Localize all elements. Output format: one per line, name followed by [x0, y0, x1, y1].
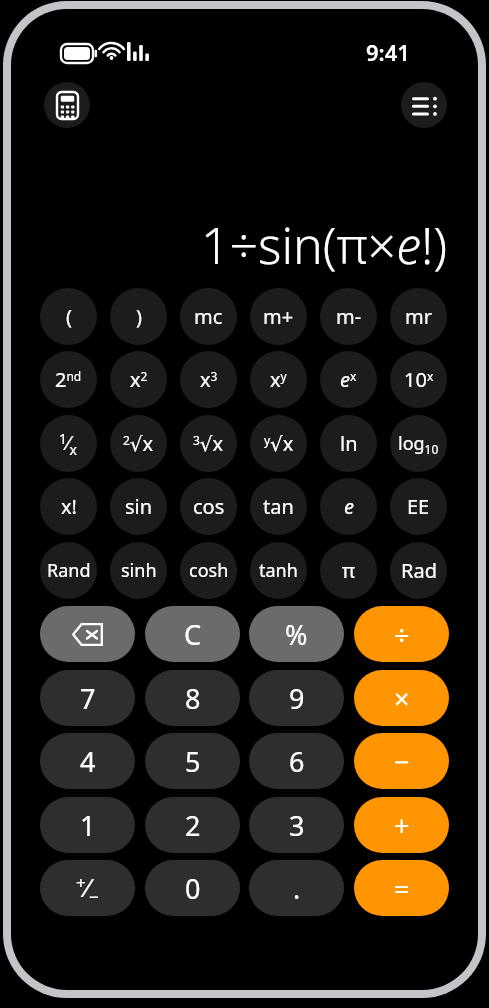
button[interactable]: =: [354, 860, 449, 916]
staticText: +: [394, 807, 410, 844]
button[interactable]: 9: [249, 670, 344, 726]
button[interactable]: C: [145, 606, 240, 662]
button[interactable]: 0: [145, 860, 240, 916]
staticText: 9:41: [366, 37, 410, 67]
staticText: 9: [289, 680, 305, 717]
button[interactable]: x!: [40, 478, 97, 535]
button[interactable]: sinh: [110, 542, 167, 599]
staticText: x2: [130, 366, 148, 393]
staticText: ex: [340, 366, 357, 393]
button[interactable]: Rand: [40, 542, 97, 599]
button[interactable]: EE: [390, 478, 447, 535]
button[interactable]: ln: [320, 415, 377, 472]
button[interactable]: m-: [320, 288, 377, 345]
button[interactable]: +: [354, 797, 449, 853]
staticText: ÷: [394, 616, 410, 653]
button[interactable]: 5: [145, 733, 240, 789]
button[interactable]: 1: [40, 797, 135, 853]
staticText: +⁄−: [76, 869, 99, 908]
staticText: m+: [263, 303, 294, 330]
button[interactable]: 6: [249, 733, 344, 789]
button[interactable]: 2√x: [110, 415, 167, 472]
button[interactable]: sin: [110, 478, 167, 535]
button[interactable]: tan: [250, 478, 307, 535]
button[interactable]: mc: [180, 288, 237, 345]
staticText: tanh: [259, 558, 298, 583]
button[interactable]: xy: [250, 351, 307, 408]
staticText: ): [136, 303, 142, 330]
staticText: y√x: [264, 430, 294, 457]
button[interactable]: ): [110, 288, 167, 345]
staticText: 1: [80, 807, 96, 844]
button[interactable]: 4: [40, 733, 135, 789]
staticText: cosh: [189, 558, 229, 583]
staticText: 10x: [404, 366, 434, 393]
button[interactable]: 1⁄x: [40, 415, 97, 472]
staticText: cos: [193, 493, 225, 520]
staticText: 8: [185, 680, 201, 717]
staticText: Rad: [401, 557, 437, 584]
staticText: mr: [405, 303, 432, 330]
button[interactable]: 2nd: [40, 351, 97, 408]
staticText: C: [184, 616, 202, 653]
staticText: 0: [185, 870, 201, 907]
button[interactable]: −: [354, 733, 449, 789]
button[interactable]: cos: [180, 478, 237, 535]
button[interactable]: ÷: [354, 606, 449, 662]
button[interactable]: 7: [40, 670, 135, 726]
staticText: 1⁄x: [59, 429, 78, 459]
staticText: e: [344, 493, 354, 520]
button[interactable]: mr: [390, 288, 447, 345]
staticText: ×: [394, 680, 410, 717]
button[interactable]: 3√x: [180, 415, 237, 472]
button[interactable]: .: [249, 860, 344, 916]
staticText: Rand: [47, 558, 91, 583]
button[interactable]: Calculator: [44, 82, 90, 128]
staticText: =: [394, 870, 410, 907]
staticText: π: [342, 557, 356, 584]
staticText: mc: [194, 303, 223, 330]
button[interactable]: ex: [320, 351, 377, 408]
staticText: %: [285, 616, 308, 653]
staticText: xy: [270, 366, 287, 393]
staticText: 4: [80, 743, 96, 780]
button[interactable]: %: [249, 606, 344, 662]
button[interactable]: ×: [354, 670, 449, 726]
staticText: x!: [61, 493, 77, 520]
staticText: (: [66, 303, 72, 330]
staticText: 3√x: [193, 430, 224, 457]
button[interactable]: x2: [110, 351, 167, 408]
button[interactable]: Delete: [40, 606, 135, 662]
button[interactable]: m+: [250, 288, 307, 345]
button[interactable]: Toggle sign: [40, 860, 135, 916]
staticText: tan: [263, 493, 294, 520]
button[interactable]: tanh: [250, 542, 307, 599]
staticText: .: [293, 870, 301, 907]
staticText: 2√x: [123, 430, 154, 457]
button[interactable]: 2: [145, 797, 240, 853]
staticText: 2: [185, 807, 201, 844]
button[interactable]: 10x: [390, 351, 447, 408]
button[interactable]: (: [40, 288, 97, 345]
staticText: ln: [340, 430, 358, 457]
button[interactable]: History: [401, 82, 447, 128]
staticText: 3: [289, 807, 305, 844]
button[interactable]: 3: [249, 797, 344, 853]
button[interactable]: Rad: [390, 542, 447, 599]
staticText: m-: [336, 303, 362, 330]
staticText: −: [394, 743, 410, 780]
button[interactable]: e: [320, 478, 377, 535]
button[interactable]: x3: [180, 351, 237, 408]
staticText: 5: [185, 743, 201, 780]
staticText: EE: [407, 493, 430, 520]
button[interactable]: log10: [390, 415, 447, 472]
button[interactable]: 8: [145, 670, 240, 726]
button[interactable]: cosh: [180, 542, 237, 599]
staticText: 6: [289, 743, 305, 780]
staticText: 2nd: [55, 366, 82, 393]
staticText: sinh: [121, 558, 157, 583]
button[interactable]: y√x: [250, 415, 307, 472]
button[interactable]: π: [320, 542, 377, 599]
staticText: x3: [200, 366, 218, 393]
staticText: log10: [398, 431, 439, 457]
